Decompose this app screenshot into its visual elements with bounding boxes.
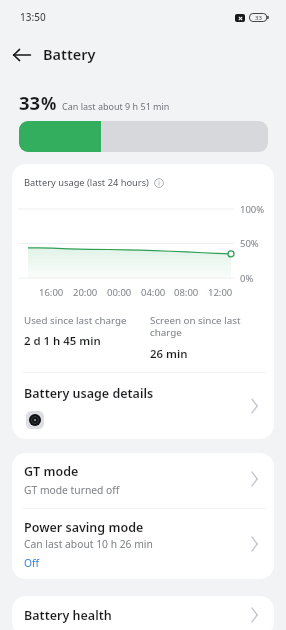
staticText: Screen on since last charge: [150, 314, 241, 339]
staticText: Used since last charge: [24, 314, 127, 327]
staticText: Power saving mode: [24, 519, 144, 536]
other: Open: [251, 536, 259, 552]
staticText: Battery health: [24, 607, 112, 624]
staticText: 100%: [240, 203, 265, 216]
staticText: 08:00: [174, 286, 199, 299]
staticText: 26 min: [150, 346, 188, 362]
staticText: 2 d 1 h 45 min: [24, 333, 101, 349]
other: Open: [251, 398, 259, 414]
staticText: GT mode: [24, 463, 79, 480]
staticText: GT mode turned off: [24, 483, 120, 497]
button[interactable]: [12, 596, 274, 630]
staticText: 33: [19, 90, 41, 115]
staticText: Can last about 9 h 51 min: [62, 100, 170, 112]
staticText: Off: [24, 556, 40, 570]
button[interactable]: Back: [8, 41, 36, 69]
button[interactable]: [12, 373, 274, 439]
button[interactable]: [12, 453, 274, 508]
staticText: %: [41, 92, 57, 115]
staticText: Battery usage details: [24, 385, 154, 402]
staticText: Can last about 10 h 26 min: [24, 537, 153, 551]
button[interactable]: [12, 509, 274, 579]
other: Open: [251, 607, 259, 623]
staticText: 00:00: [107, 286, 132, 299]
staticText: 20:00: [73, 286, 98, 299]
other: Open: [251, 471, 259, 487]
staticText: 33: [255, 14, 262, 22]
staticText: 04:00: [141, 286, 166, 299]
staticText: 0%: [240, 272, 254, 285]
staticText: Battery usage (last 24 hours): [24, 176, 149, 189]
staticText: 50%: [240, 237, 259, 250]
staticText: 16:00: [39, 286, 64, 299]
staticText: 12:00: [208, 286, 233, 299]
staticText: 13:50: [20, 10, 46, 24]
staticText: Battery: [43, 44, 96, 64]
